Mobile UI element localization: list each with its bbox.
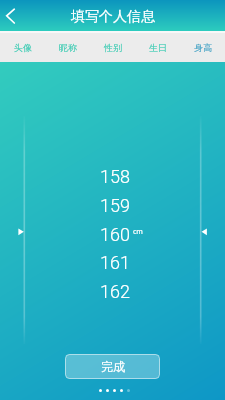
button[interactable] (113, 389, 116, 392)
button[interactable]: 身高 (180, 31, 225, 62)
button[interactable]: 生日 (135, 31, 180, 62)
staticText: 填写个人信息 (71, 8, 155, 26)
button[interactable]: 性别 (90, 31, 135, 62)
staticText: cm (133, 227, 143, 237)
button[interactable] (120, 389, 123, 392)
button[interactable]: 头像 (0, 31, 45, 62)
staticText: 生日 (149, 42, 167, 53)
staticText: 162 (100, 281, 130, 302)
staticText: 身高 (194, 42, 212, 53)
staticText: 160 (100, 224, 130, 245)
staticText: 昵称 (59, 42, 77, 53)
staticText: 性别 (104, 42, 122, 53)
button[interactable] (106, 389, 109, 392)
staticText: 161 (100, 252, 130, 273)
button[interactable]: 昵称 (45, 31, 90, 62)
staticText: 头像 (14, 42, 32, 53)
staticText: 完成 (101, 359, 125, 374)
button[interactable] (127, 389, 130, 392)
button[interactable]: Back (0, 0, 28, 31)
staticText: 159 (100, 195, 130, 216)
button[interactable] (99, 389, 102, 392)
button[interactable]: 完成 (65, 354, 160, 379)
staticText: 158 (100, 166, 130, 187)
